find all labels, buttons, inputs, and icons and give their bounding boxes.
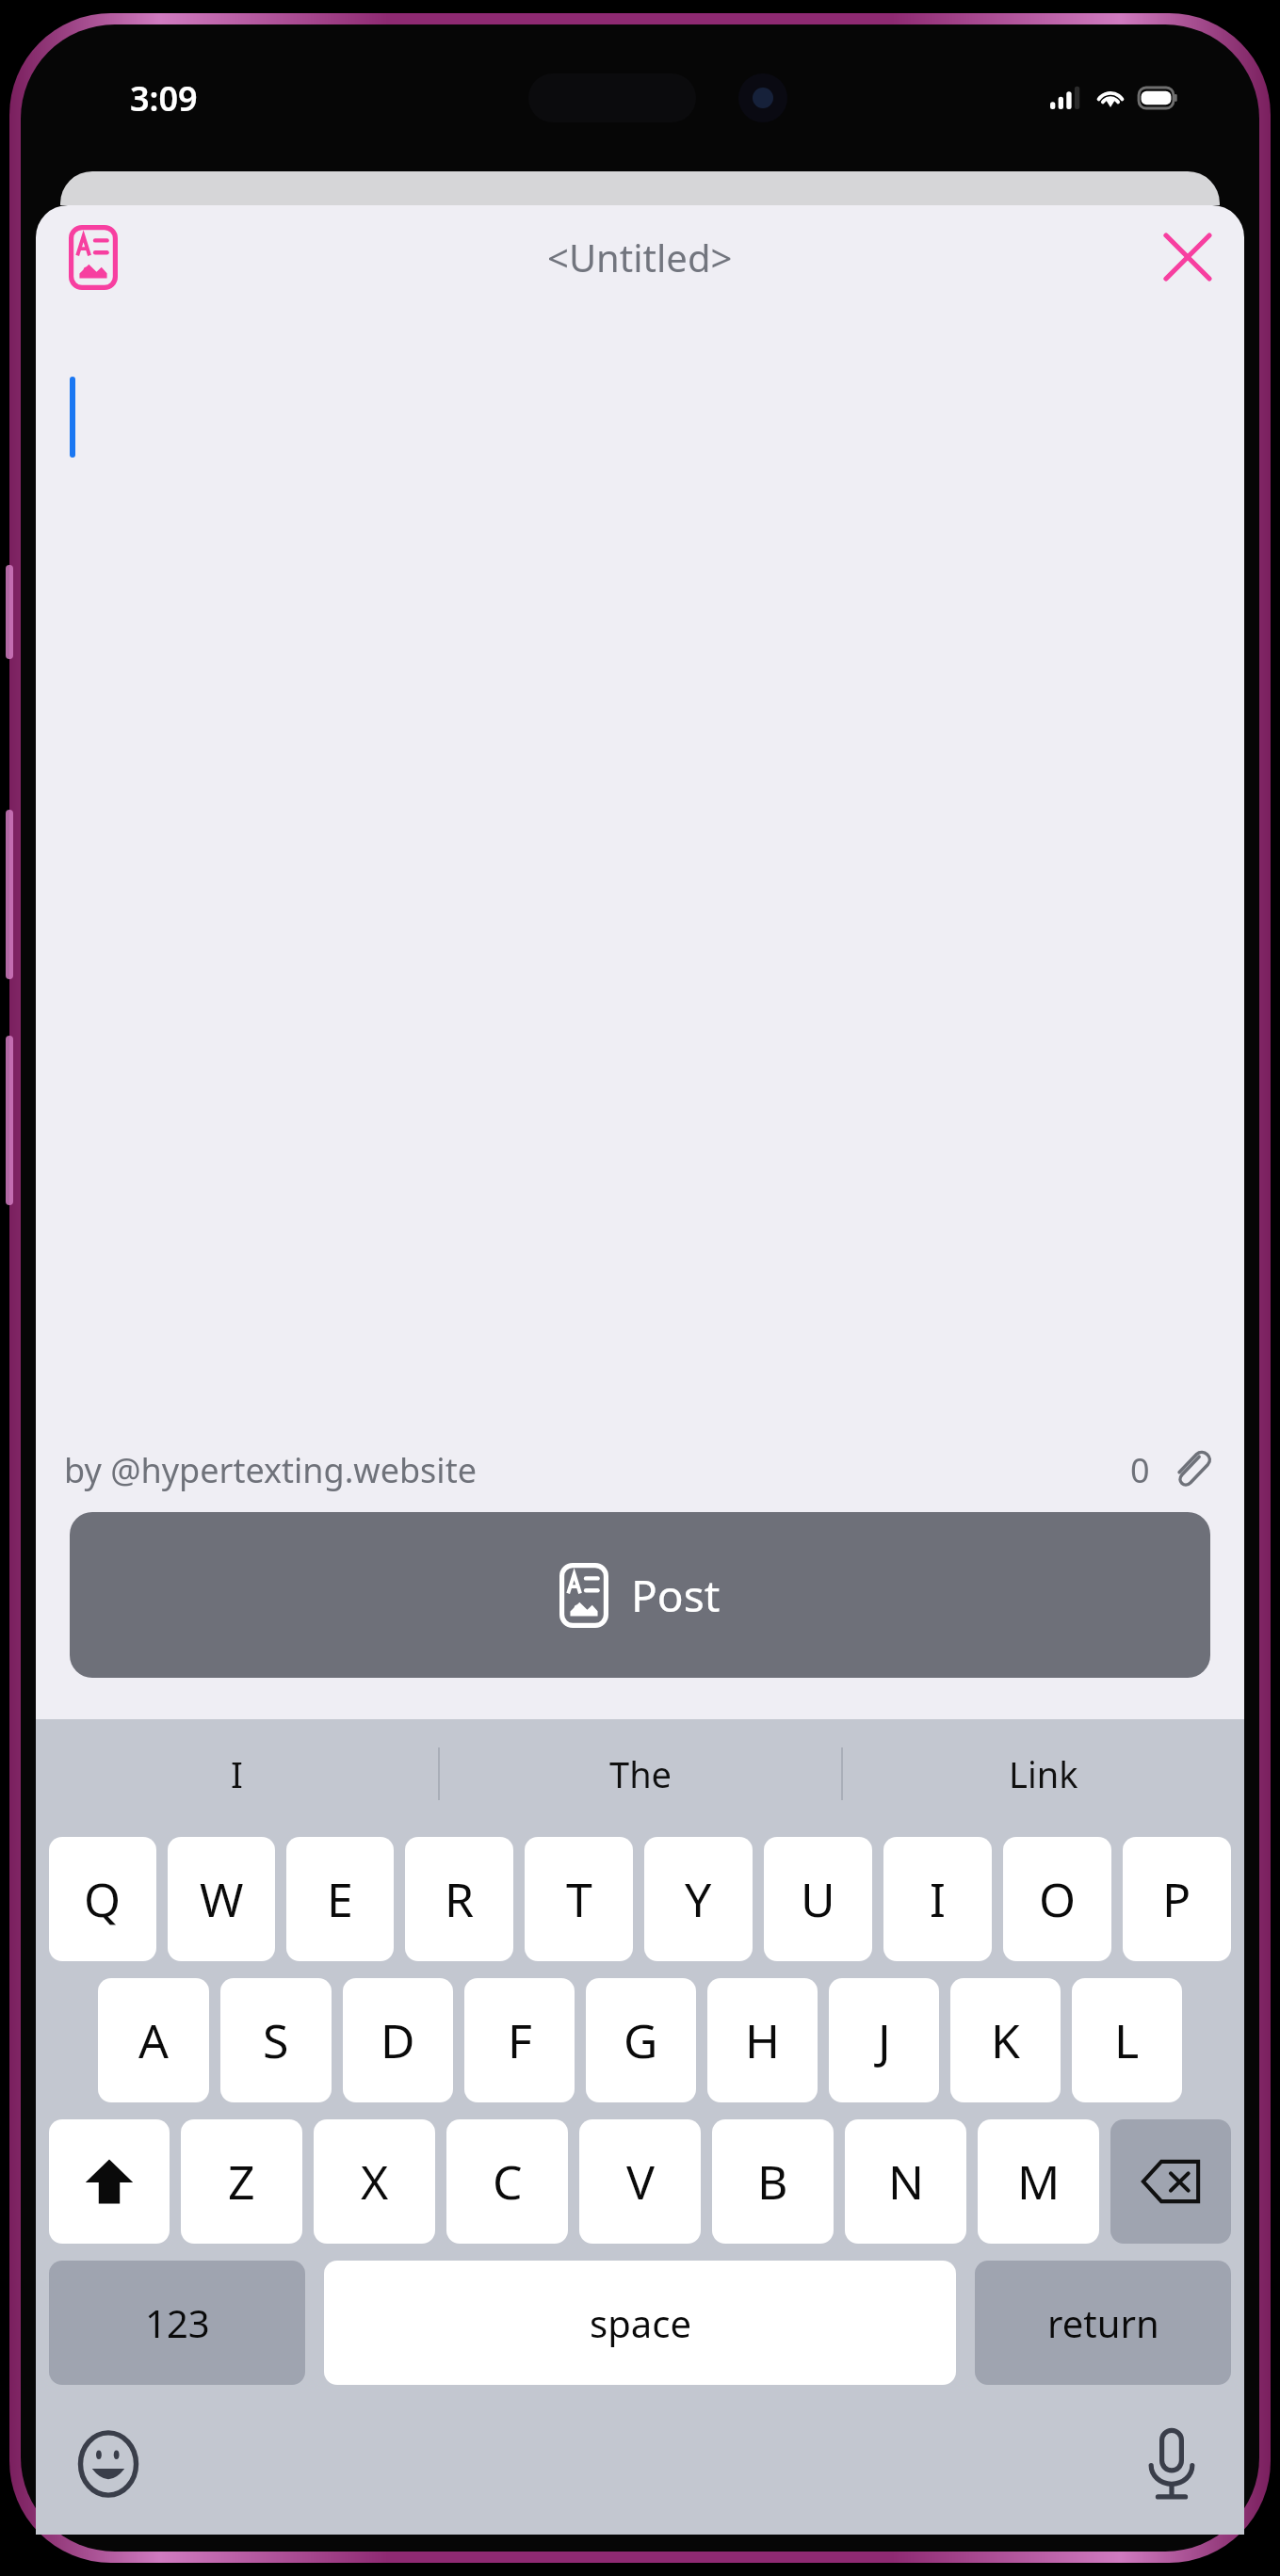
button[interactable]: K [950,1978,1061,2102]
staticText: F [508,2008,532,2072]
staticText: <Untitled> [547,232,733,282]
staticText: Post [631,1566,721,1625]
button[interactable]: E [286,1837,394,1961]
staticText: The [609,1749,672,1798]
staticText: by @hypertexting.website [64,1447,477,1493]
button[interactable]: Z [181,2119,302,2244]
button[interactable]: I [36,1719,438,1828]
staticText: Q [84,1867,122,1931]
button[interactable]: P [1123,1837,1231,1961]
button[interactable]: return [975,2261,1231,2385]
button[interactable]: J [829,1978,939,2102]
button[interactable]: N [845,2119,966,2244]
button[interactable]: Close [1152,221,1223,293]
button[interactable]: Emoji [68,2423,149,2504]
staticText: I [930,1867,946,1931]
staticText: S [263,2008,289,2072]
staticText: 123 [145,2297,210,2348]
button[interactable]: B [712,2119,834,2244]
staticText: O [1039,1867,1077,1931]
button[interactable]: G [586,1978,696,2102]
staticText: I [231,1749,243,1798]
button[interactable]: L [1072,1978,1182,2102]
button[interactable]: S [220,1978,332,2102]
button[interactable]: Shift [49,2119,170,2244]
button[interactable]: Q [49,1837,156,1961]
button[interactable]: The [440,1719,841,1828]
button[interactable]: D [343,1978,453,2102]
button[interactable]: space [324,2261,956,2385]
staticText: T [566,1867,592,1931]
staticText: 3:09 [130,75,198,121]
staticText: G [624,2008,658,2072]
staticText: H [745,2008,781,2072]
button[interactable]: W [168,1837,275,1961]
button[interactable]: C [446,2119,568,2244]
staticText: N [888,2149,924,2214]
staticText: J [878,2008,891,2072]
button[interactable]: T [525,1837,633,1961]
staticText: M [1017,2149,1061,2214]
staticText: 0 [1130,1447,1150,1493]
button[interactable]: Post [70,1512,1210,1678]
button[interactable] [36,309,1244,1427]
staticText: Y [685,1867,712,1931]
button[interactable]: M [978,2119,1099,2244]
button[interactable]: O [1003,1837,1111,1961]
button[interactable]: Post type [58,222,128,292]
staticText: space [590,2297,691,2348]
button[interactable]: I [883,1837,992,1961]
button[interactable]: V [579,2119,701,2244]
staticText: D [381,2008,415,2072]
staticText: Z [228,2149,255,2214]
staticText: R [445,1867,475,1931]
button[interactable]: U [764,1837,872,1961]
staticText: Link [1009,1749,1078,1798]
staticText: E [327,1867,353,1931]
staticText: return [1047,2297,1159,2348]
staticText: L [1114,2008,1140,2072]
button[interactable]: R [405,1837,513,1961]
button[interactable]: Attach [1165,1444,1216,1495]
button[interactable]: Dictation [1131,2423,1212,2504]
staticText: B [757,2149,788,2214]
button[interactable]: A [98,1978,209,2102]
staticText: K [991,2008,1020,2072]
staticText: U [801,1867,835,1931]
button[interactable]: H [707,1978,818,2102]
button[interactable]: X [314,2119,435,2244]
staticText: X [361,2149,389,2214]
button[interactable]: Backspace [1110,2119,1231,2244]
staticText: P [1162,1867,1191,1931]
button[interactable]: F [464,1978,575,2102]
staticText: C [493,2149,523,2214]
staticText: V [626,2149,655,2214]
staticText: W [200,1867,244,1931]
button[interactable]: 123 [49,2261,305,2385]
button[interactable]: Y [644,1837,753,1961]
button[interactable]: Link [843,1719,1244,1828]
staticText: A [138,2008,169,2072]
